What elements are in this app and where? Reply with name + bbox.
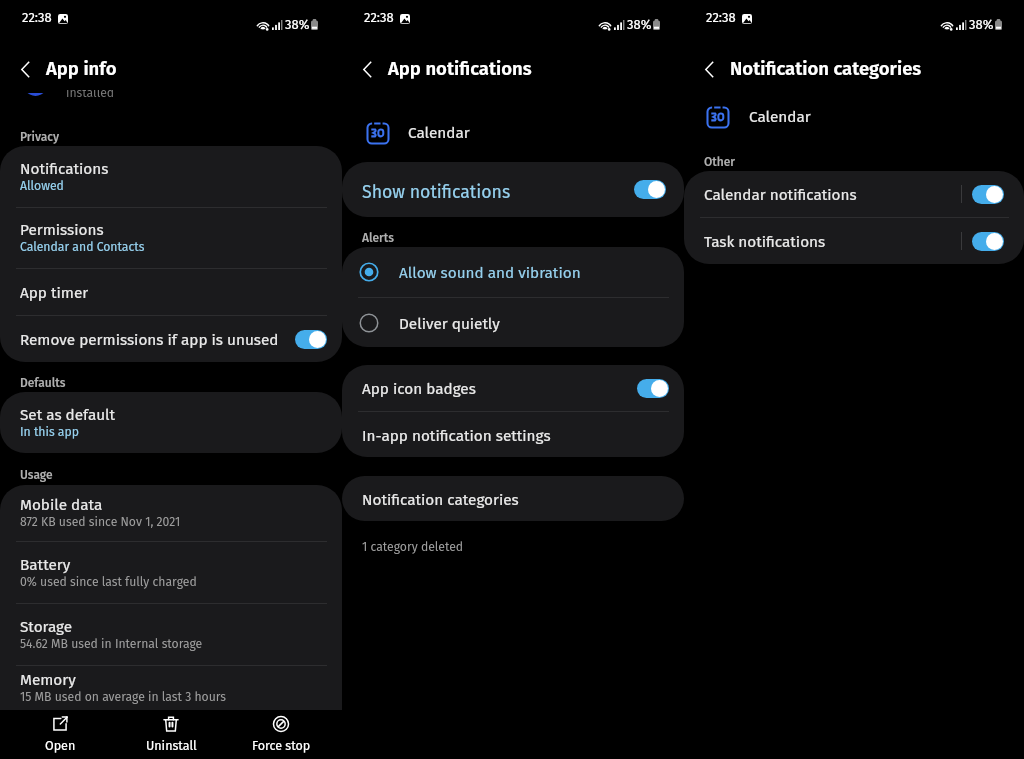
staticText: In this app <box>20 425 79 440</box>
button[interactable]: Permissions <box>0 208 342 268</box>
staticText: installed <box>66 90 115 96</box>
staticText: 38% <box>969 17 994 33</box>
staticText: Task notifications <box>704 233 961 251</box>
staticText: Notification categories <box>730 58 922 80</box>
button[interactable]: Set as default <box>0 392 342 453</box>
staticText: Show notifications <box>362 181 634 202</box>
button[interactable]: Notifications <box>0 146 342 207</box>
staticText: Memory <box>20 671 76 689</box>
staticText: Usage <box>20 468 53 482</box>
staticText: Defaults <box>20 376 66 390</box>
staticText: Alerts <box>362 231 395 245</box>
staticText: Allowed <box>20 179 64 194</box>
button[interactable]: Toggle on <box>972 232 1004 251</box>
staticText: Privacy <box>20 130 60 144</box>
staticText: Allow sound and vibration <box>399 264 581 282</box>
button[interactable]: Toggle on <box>295 330 327 349</box>
button[interactable]: Toggle on <box>972 185 1004 204</box>
staticText: Other <box>704 155 736 169</box>
button[interactable]: Show notifications <box>342 162 684 217</box>
staticText: Calendar notifications <box>704 186 961 204</box>
staticText: 15 MB used on average in last 3 hours <box>20 690 227 705</box>
button[interactable]: Force stop app <box>239 710 323 753</box>
staticText: Calendar <box>749 108 811 126</box>
staticText: In-app notification settings <box>362 427 551 445</box>
button[interactable]: Navigate up <box>349 51 385 87</box>
button[interactable]: Battery <box>0 542 342 603</box>
staticText: App notifications <box>388 58 532 80</box>
button[interactable]: Uninstall app <box>129 710 213 753</box>
button[interactable]: Calendar notifications <box>684 171 1024 217</box>
button[interactable]: Notification categories <box>342 476 684 521</box>
staticText: 1 category deleted <box>362 540 464 555</box>
staticText: Calendar and Contacts <box>20 240 145 255</box>
button[interactable]: Toggle on <box>634 180 666 199</box>
staticText: Notification categories <box>362 491 519 509</box>
staticText: Uninstall <box>146 738 197 753</box>
button[interactable]: Toggle on <box>637 379 669 398</box>
button[interactable]: Allow sound and vibration <box>342 247 684 297</box>
button[interactable]: App icon badges <box>342 365 684 411</box>
staticText: Mobile data <box>20 496 103 514</box>
staticText: Open <box>45 738 76 753</box>
staticText: 22:38 <box>706 10 736 26</box>
staticText: App icon badges <box>362 380 637 398</box>
staticText: Storage <box>20 618 73 636</box>
staticText: 22:38 <box>22 10 52 26</box>
button[interactable]: Remove permissions if app is unused <box>0 316 342 362</box>
button[interactable]: Deliver quietly <box>342 298 684 347</box>
staticText: Calendar <box>408 124 470 142</box>
staticText: App info <box>46 58 117 80</box>
staticText: 38% <box>627 17 652 33</box>
staticText: Notifications <box>20 160 109 178</box>
button[interactable]: In-app notification settings <box>342 412 684 457</box>
staticText: Deliver quietly <box>399 315 500 333</box>
staticText: App timer <box>20 284 89 302</box>
button[interactable]: Mobile data <box>0 485 342 541</box>
staticText: 54.62 MB used in Internal storage <box>20 637 203 652</box>
staticText: 872 KB used since Nov 1, 2021 <box>20 515 181 530</box>
button[interactable]: Task notifications <box>684 218 1024 264</box>
staticText: Set as default <box>20 406 116 424</box>
button[interactable]: Open app <box>18 710 102 753</box>
button[interactable]: Navigate up <box>7 51 43 87</box>
staticText: Battery <box>20 556 71 574</box>
staticText: 22:38 <box>364 10 394 26</box>
button[interactable]: Storage <box>0 604 342 665</box>
button[interactable]: Navigate up <box>691 51 727 87</box>
staticText: Remove permissions if app is unused <box>20 331 295 349</box>
button[interactable]: App timer <box>0 269 342 315</box>
button[interactable]: Memory <box>0 666 342 710</box>
staticText: Permissions <box>20 221 104 239</box>
staticText: 0% used since last fully charged <box>20 575 197 590</box>
staticText: Force stop <box>252 738 311 753</box>
staticText: 38% <box>285 17 310 33</box>
